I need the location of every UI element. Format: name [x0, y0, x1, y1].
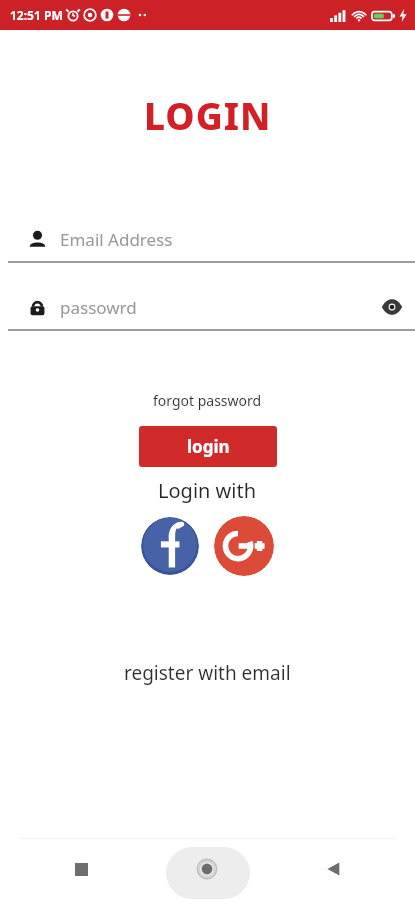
- staticText: 12:51 PM: [10, 7, 63, 23]
- staticText: LOGIN: [144, 90, 272, 140]
- button[interactable]: Show password: [377, 292, 407, 322]
- staticText: passowrd: [60, 296, 137, 319]
- button[interactable]: register with email: [112, 656, 303, 690]
- button[interactable]: Login with Google: [214, 516, 274, 576]
- button[interactable]: forgot password: [143, 388, 272, 413]
- staticText: Login with: [158, 477, 257, 504]
- button[interactable]: Login with Facebook: [141, 517, 199, 575]
- button[interactable]: Back: [310, 846, 356, 892]
- button[interactable]: Home: [184, 846, 230, 892]
- button[interactable]: passowrd: [0, 285, 415, 331]
- button[interactable]: login: [139, 426, 277, 467]
- staticText: login: [187, 435, 230, 458]
- button[interactable]: Recents: [58, 846, 104, 892]
- staticText: Email Address: [60, 228, 173, 251]
- button[interactable]: Email Address: [0, 217, 415, 263]
